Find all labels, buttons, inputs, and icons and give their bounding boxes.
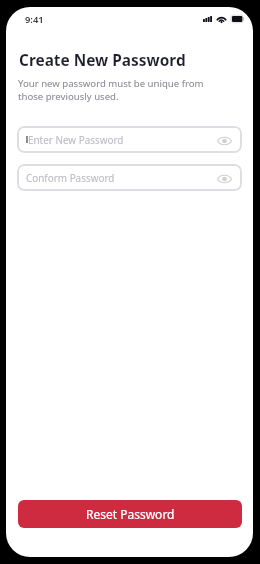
staticText: Enter New Password xyxy=(28,133,124,146)
button[interactable]: Conform Password xyxy=(17,164,242,191)
button[interactable]: Reset Password xyxy=(18,500,242,528)
staticText: 9:41 xyxy=(25,13,44,26)
staticText: Your new password must be unique from th… xyxy=(18,77,204,103)
staticText: Create New Password xyxy=(19,50,186,71)
button[interactable]: Enter New Password xyxy=(17,126,242,153)
staticText: Conform Password xyxy=(26,171,115,184)
button[interactable]: Toggle password visibility xyxy=(216,132,233,149)
staticText: Reset Password xyxy=(86,506,175,522)
button[interactable]: Toggle password visibility xyxy=(216,170,233,187)
